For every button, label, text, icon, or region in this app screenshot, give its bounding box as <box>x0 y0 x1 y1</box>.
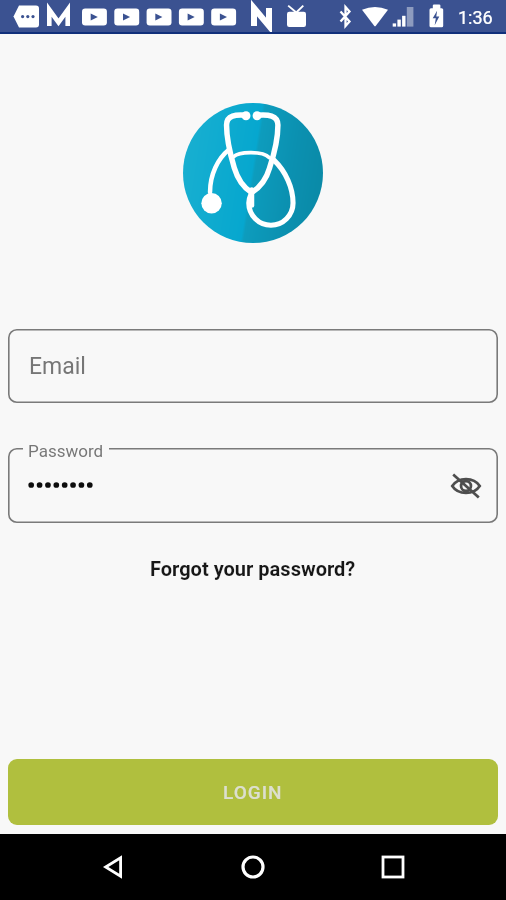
button[interactable]: Show password <box>447 467 485 505</box>
staticText: LOGIN <box>223 781 283 803</box>
staticText: Forgot your password? <box>150 557 356 580</box>
button[interactable]: Email <box>8 329 498 403</box>
button[interactable]: Show password <box>8 448 498 523</box>
button[interactable]: Forgot your password? <box>140 554 366 583</box>
staticText: Email <box>29 353 86 380</box>
button[interactable]: LOGIN <box>8 759 498 825</box>
button[interactable]: Back <box>88 841 140 893</box>
button[interactable]: Recent apps <box>367 841 419 893</box>
staticText: 1:36 <box>458 7 493 28</box>
staticText: Password <box>28 441 104 461</box>
button[interactable]: Home <box>227 841 279 893</box>
